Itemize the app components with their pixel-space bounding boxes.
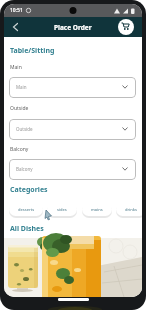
staticText: sides <box>57 207 67 212</box>
staticText: Balcony <box>16 166 33 172</box>
button[interactable]: mains <box>82 203 112 216</box>
staticText: mains <box>91 207 103 212</box>
staticText: All Dishes <box>10 224 44 234</box>
staticText: desserts <box>18 207 35 212</box>
button[interactable]: Outside <box>9 119 136 140</box>
staticText: Categories <box>10 185 48 195</box>
staticText: Main <box>16 84 27 90</box>
staticText: Outside <box>16 126 33 132</box>
staticText: 10:51 <box>10 7 23 14</box>
staticText: drinks <box>125 207 137 212</box>
button[interactable]: sides <box>47 203 77 216</box>
staticText: Table/Sitting <box>10 46 55 56</box>
button[interactable]: desserts <box>9 203 43 216</box>
button[interactable] <box>118 19 134 35</box>
button[interactable]: Main <box>9 77 136 98</box>
staticText: Balcony <box>10 146 29 153</box>
staticText: Outside <box>10 105 29 112</box>
button[interactable]: Balcony <box>9 159 136 180</box>
button[interactable]: drinks <box>116 203 142 216</box>
staticText: Place Order <box>54 23 92 32</box>
staticText: Main <box>10 64 22 71</box>
button[interactable] <box>8 19 24 35</box>
